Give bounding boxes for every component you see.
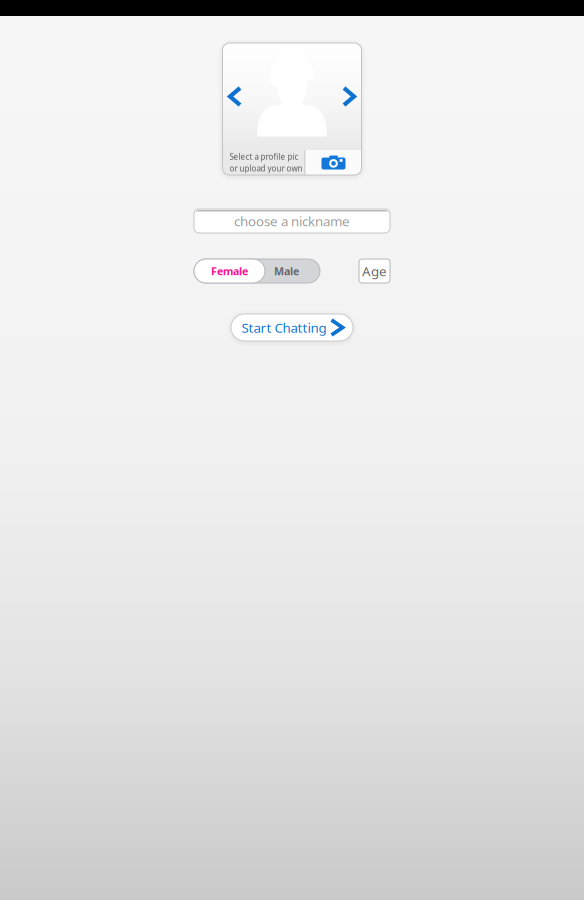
button[interactable]: Age bbox=[359, 259, 390, 283]
staticText: Age bbox=[362, 262, 387, 280]
button[interactable]: Take photo bbox=[305, 150, 361, 175]
button[interactable]: Previous photo bbox=[221, 66, 249, 126]
staticText: Female bbox=[211, 264, 248, 278]
button[interactable]: Start Chatting bbox=[231, 314, 353, 341]
staticText: Start Chatting bbox=[241, 319, 326, 336]
button[interactable]: Male bbox=[265, 259, 308, 283]
staticText: Male bbox=[274, 264, 299, 278]
button[interactable]: Female bbox=[194, 259, 265, 283]
staticText: or upload your own bbox=[229, 163, 302, 174]
button[interactable]: Next photo bbox=[335, 66, 363, 126]
staticText: Select a profile pic bbox=[229, 151, 298, 162]
staticText: choose a nickname bbox=[234, 212, 350, 230]
button[interactable]: choose a nickname bbox=[194, 209, 390, 233]
